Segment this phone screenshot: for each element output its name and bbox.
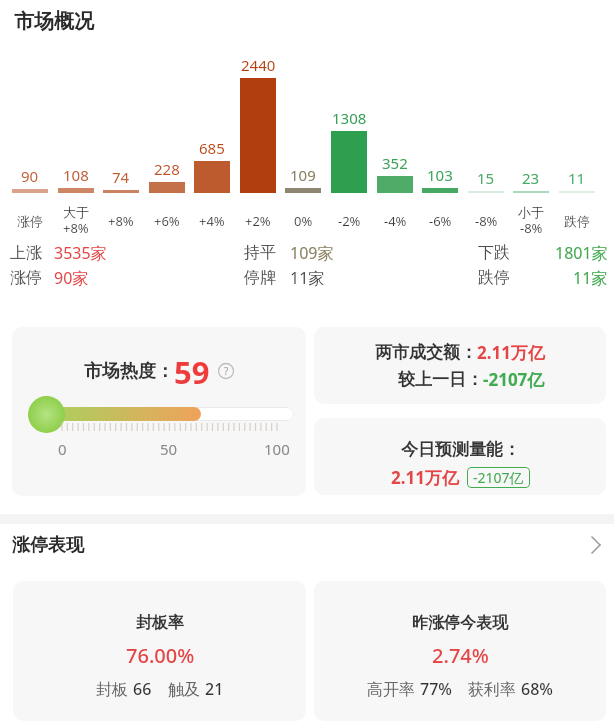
staticText: 352 bbox=[382, 153, 408, 173]
staticText: 50 bbox=[160, 439, 178, 459]
staticText: 获利率 bbox=[468, 678, 521, 700]
staticText: 2440 bbox=[241, 55, 276, 75]
staticText: 涨停表现 bbox=[12, 534, 84, 557]
staticText: 109 bbox=[290, 165, 316, 185]
staticText: 小于 bbox=[518, 204, 544, 220]
staticText: 11家 bbox=[573, 267, 608, 289]
staticText: 跌停 bbox=[564, 213, 590, 229]
staticText: 1308 bbox=[332, 108, 367, 128]
staticText: 2.74% bbox=[432, 642, 489, 669]
staticText: -8% bbox=[475, 212, 498, 230]
staticText: -2% bbox=[338, 212, 361, 230]
button[interactable]: 昨涨停今表现 bbox=[314, 581, 606, 721]
staticText: -8% bbox=[520, 219, 543, 237]
staticText: 停牌 bbox=[244, 268, 276, 288]
staticText: 11家 bbox=[290, 267, 325, 289]
staticText: 11 bbox=[568, 168, 586, 188]
staticText: 跌停 bbox=[478, 268, 510, 288]
staticText: -6% bbox=[429, 212, 452, 230]
staticText: 3535家 bbox=[54, 242, 107, 264]
staticText: 90家 bbox=[54, 267, 89, 289]
button[interactable]: 今日预测量能： bbox=[314, 418, 606, 495]
staticText: 市场概况 bbox=[14, 9, 94, 34]
staticText: +2% bbox=[245, 212, 271, 230]
staticText: +4% bbox=[199, 212, 225, 230]
staticText: 下跌 bbox=[478, 243, 510, 263]
staticText: 涨停 bbox=[10, 268, 42, 288]
staticText: 90 bbox=[21, 166, 39, 186]
staticText: 0% bbox=[294, 212, 313, 230]
staticText: +8% bbox=[108, 212, 134, 230]
button[interactable]: 封板率 bbox=[13, 581, 306, 721]
staticText: 今日预测量能： bbox=[401, 439, 520, 460]
staticText: +8% bbox=[63, 219, 89, 237]
staticText: 触及 bbox=[168, 678, 205, 700]
staticText: 100 bbox=[264, 439, 290, 459]
staticText: +6% bbox=[154, 212, 180, 230]
staticText: -2107亿 bbox=[483, 368, 545, 391]
staticText: 封板 bbox=[96, 678, 133, 700]
staticText: 108 bbox=[63, 165, 89, 185]
staticText: ? bbox=[224, 364, 229, 378]
staticText: 21 bbox=[205, 678, 224, 700]
staticText: 昨涨停今表现 bbox=[412, 613, 508, 633]
staticText: 66 bbox=[133, 678, 152, 700]
staticText: 685 bbox=[199, 138, 225, 158]
staticText: 74 bbox=[112, 167, 130, 187]
staticText: -2107亿 bbox=[473, 468, 524, 487]
staticText: 59 bbox=[174, 351, 210, 391]
staticText: 高开率 bbox=[367, 678, 420, 700]
staticText: 两市成交额： bbox=[375, 342, 477, 363]
staticText: 较上一日： bbox=[398, 369, 483, 390]
staticText: 大于 bbox=[63, 204, 89, 220]
staticText: 涨停 bbox=[17, 213, 43, 229]
staticText: 0 bbox=[58, 439, 67, 459]
staticText: 68% bbox=[521, 678, 553, 700]
button[interactable]: 两市成交额： bbox=[314, 327, 606, 404]
staticText: 15 bbox=[477, 168, 495, 188]
staticText: 76.00% bbox=[126, 642, 195, 669]
staticText: 2.11万亿 bbox=[477, 341, 545, 364]
staticText: 封板率 bbox=[136, 613, 184, 633]
staticText: 上涨 bbox=[10, 243, 42, 263]
button[interactable]: 市场热度： bbox=[12, 327, 306, 496]
staticText: 23 bbox=[522, 168, 540, 188]
staticText: 1801家 bbox=[555, 242, 608, 264]
staticText: 市场热度： bbox=[84, 360, 174, 383]
staticText: 2.11万亿 bbox=[391, 466, 459, 489]
staticText: 103 bbox=[427, 165, 453, 185]
staticText: -4% bbox=[384, 212, 407, 230]
staticText: 109家 bbox=[290, 242, 334, 264]
staticText: 77% bbox=[420, 678, 452, 700]
staticText: 228 bbox=[154, 159, 180, 179]
button[interactable] bbox=[590, 537, 602, 553]
staticText: 持平 bbox=[244, 243, 276, 263]
